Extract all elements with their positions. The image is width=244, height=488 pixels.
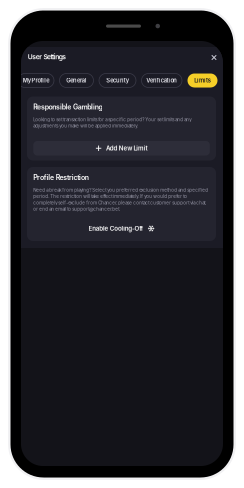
button[interactable]: Add New Limit	[33, 141, 210, 155]
staticText: Profile Restriction	[33, 173, 89, 182]
button[interactable]: Close	[206, 50, 221, 65]
staticText: Enable Cooling-Off	[89, 225, 143, 232]
staticText: Add New Limit	[106, 144, 147, 152]
button[interactable]: Enable Cooling-Off	[33, 222, 210, 235]
staticText: Responsible Gambling	[33, 103, 102, 111]
button[interactable]: Security	[99, 73, 136, 87]
button[interactable]: My Profile	[18, 73, 54, 87]
staticText: User Settings	[28, 53, 66, 61]
staticText: Security	[106, 77, 129, 84]
staticText: Looking to set transaction limits for a …	[33, 117, 191, 129]
button[interactable]: Limits	[187, 73, 217, 87]
button[interactable]: Verification	[141, 73, 182, 87]
button[interactable]: General	[59, 73, 93, 87]
staticText: Verification	[146, 77, 177, 84]
staticText: My Profile	[23, 77, 49, 84]
staticText: Need a break from playing? Select you pr…	[33, 187, 208, 212]
staticText: Limits	[194, 77, 211, 84]
staticText: General	[66, 77, 87, 84]
